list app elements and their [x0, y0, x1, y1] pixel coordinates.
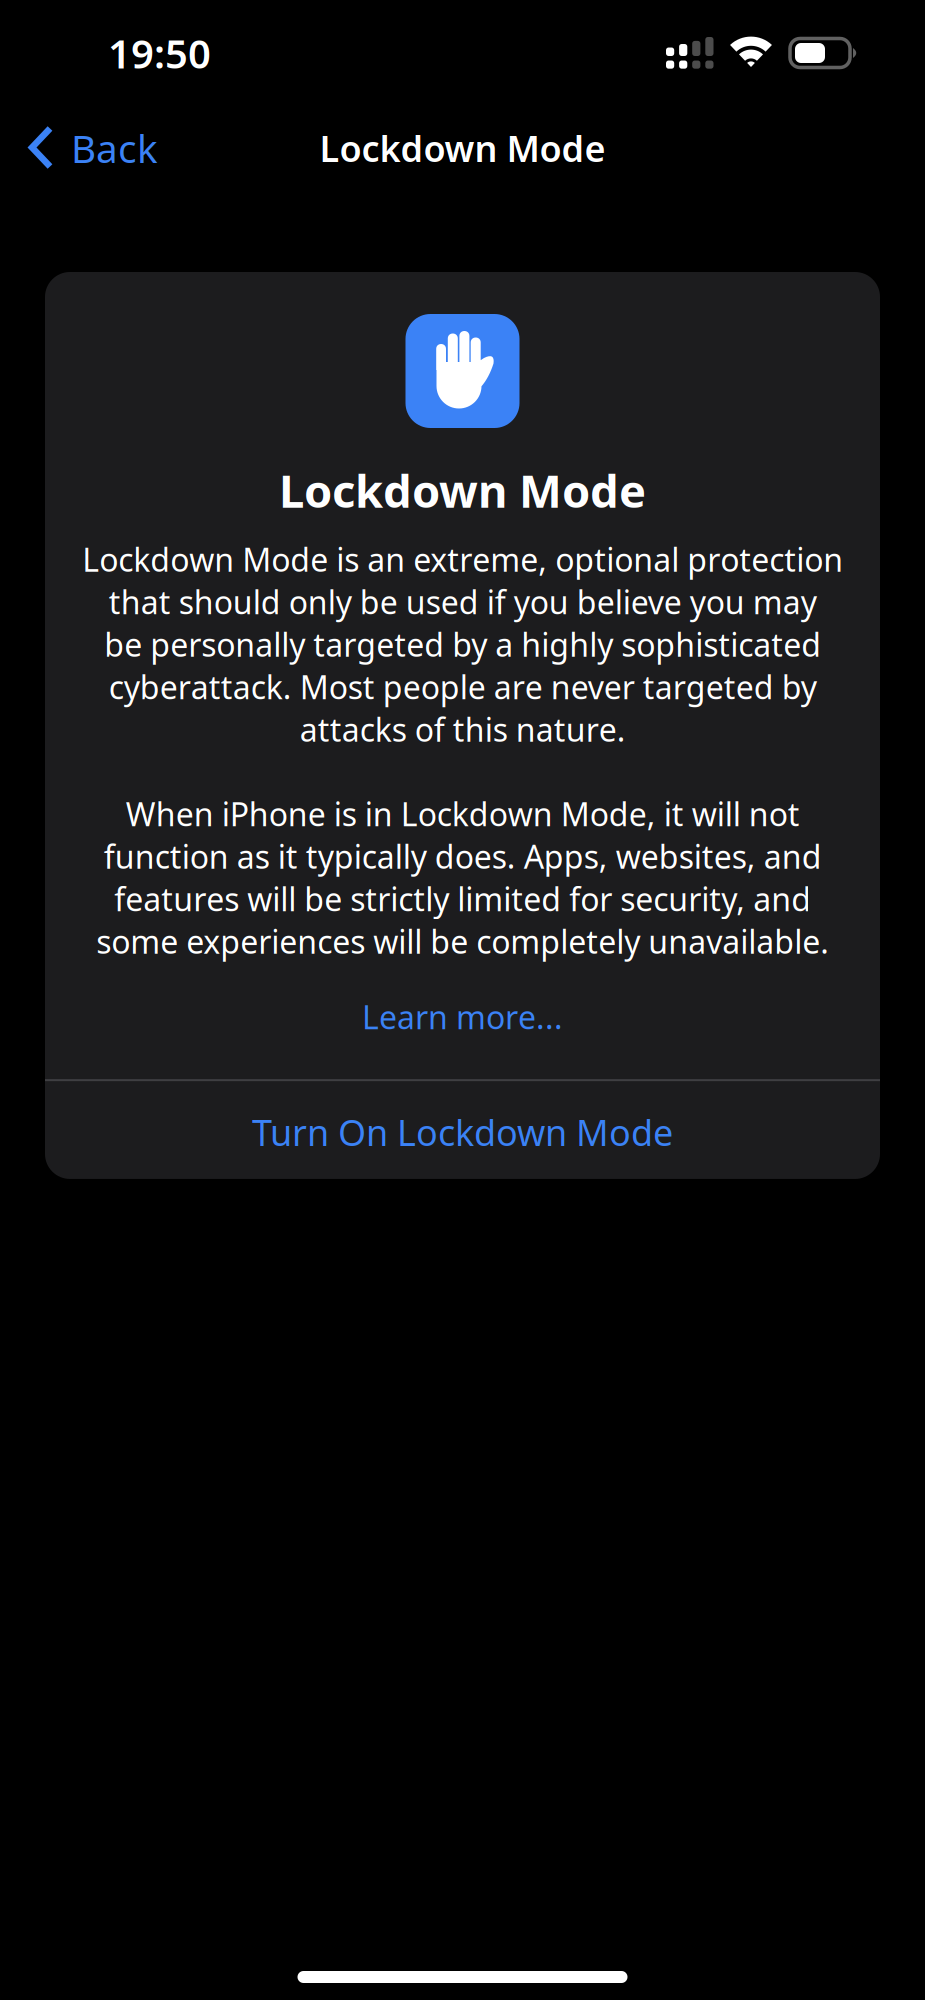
- staticText: Back: [71, 122, 158, 174]
- staticText: When iPhone is in Lockdown Mode, it will…: [96, 793, 829, 963]
- button[interactable]: Learn more...: [45, 983, 880, 1051]
- staticText: Lockdown Mode: [279, 460, 646, 520]
- button[interactable]: Turn On Lockdown Mode: [45, 1081, 880, 1179]
- staticText: Lockdown Mode is an extreme, optional pr…: [82, 538, 843, 751]
- staticText: 19:50: [108, 26, 211, 79]
- staticText: Turn On Lockdown Mode: [252, 1108, 673, 1156]
- button[interactable]: Back: [0, 110, 250, 186]
- staticText: Lockdown Mode: [319, 124, 605, 172]
- staticText: Learn more...: [362, 996, 563, 1038]
